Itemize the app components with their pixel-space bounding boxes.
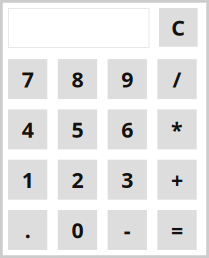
button[interactable]: = [157, 210, 197, 250]
staticText: * [171, 115, 183, 143]
button[interactable]: 3 [108, 160, 147, 200]
button[interactable]: 0 [58, 210, 97, 250]
button[interactable]: - [108, 210, 147, 250]
button[interactable]: . [8, 210, 47, 250]
staticText: 7 [22, 65, 34, 93]
button[interactable]: * [157, 109, 197, 149]
staticText: 0 [71, 216, 83, 244]
button[interactable]: 8 [58, 59, 97, 99]
staticText: 5 [71, 115, 83, 143]
staticText: 1 [22, 165, 34, 194]
staticText: + [171, 165, 183, 194]
staticText: 4 [22, 115, 34, 143]
staticText: 8 [71, 65, 83, 93]
staticText: 2 [71, 165, 83, 194]
button[interactable]: 6 [108, 109, 147, 149]
staticText: C [171, 13, 185, 41]
button[interactable]: C [159, 8, 198, 47]
staticText: = [171, 216, 183, 244]
button[interactable]: / [157, 59, 197, 99]
staticText: 3 [121, 165, 133, 194]
button[interactable]: 5 [58, 109, 97, 149]
button[interactable]: Result display [8, 8, 149, 48]
staticText: 9 [121, 65, 133, 93]
button[interactable]: + [157, 160, 197, 200]
button[interactable]: 7 [8, 59, 47, 99]
button[interactable]: 9 [108, 59, 147, 99]
button[interactable]: 4 [8, 109, 47, 149]
staticText: 6 [121, 115, 133, 143]
button[interactable]: 1 [8, 160, 47, 200]
staticText: . [25, 216, 31, 244]
staticText: - [124, 216, 131, 244]
staticText: / [172, 65, 181, 93]
button[interactable]: 2 [58, 160, 97, 200]
